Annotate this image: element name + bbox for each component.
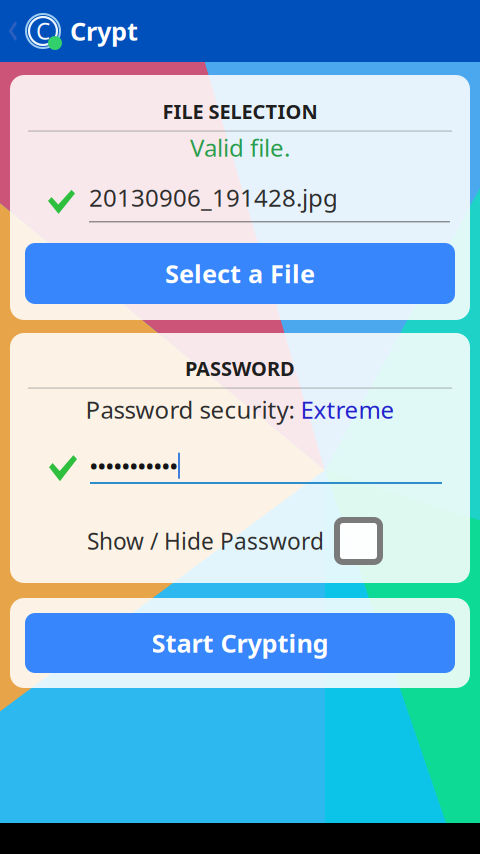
staticText: Crypt: [70, 14, 138, 48]
button[interactable]: Start Crypting: [10, 598, 470, 688]
staticText: 20130906_191428.jpg: [89, 181, 338, 213]
staticText: FILE SELECTION: [162, 98, 317, 125]
staticText: •••••••••••: [90, 452, 178, 479]
staticText: Extreme: [300, 394, 394, 425]
button[interactable]: Show or hide password: [337, 520, 380, 562]
staticText: Valid file.: [190, 132, 290, 163]
button[interactable]: Select a File: [25, 243, 455, 304]
button[interactable]: Back: [0, 0, 24, 62]
staticText: Password security:: [85, 394, 300, 425]
staticText: PASSWORD: [185, 355, 295, 382]
staticText: C: [36, 16, 50, 46]
staticText: Start Crypting: [151, 626, 328, 660]
staticText: Show / Hide Password: [87, 526, 324, 556]
staticText: Select a File: [165, 257, 315, 290]
